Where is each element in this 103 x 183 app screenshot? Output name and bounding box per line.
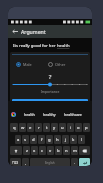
button[interactable]: Enter <box>79 158 90 166</box>
button[interactable]: ?123 <box>10 158 21 166</box>
staticText: Importance <box>10 89 90 94</box>
button[interactable]: Shift <box>10 146 22 155</box>
button[interactable]: w <box>19 123 26 132</box>
button[interactable]: m <box>71 146 78 155</box>
staticText: y <box>53 125 56 131</box>
staticText: ?123 <box>12 161 19 165</box>
staticText: z <box>26 148 28 154</box>
staticText: i <box>70 125 72 131</box>
button[interactable]: a <box>15 135 21 144</box>
button[interactable]: n <box>63 146 70 155</box>
staticText: x <box>33 148 36 154</box>
button[interactable]: s <box>22 135 29 144</box>
staticText: Male <box>23 62 32 67</box>
button[interactable]: y <box>51 123 58 132</box>
staticText: ? <box>10 73 90 81</box>
button[interactable]: r <box>35 123 42 132</box>
button[interactable]: healthy <box>43 112 56 117</box>
button[interactable]: healthcare <box>64 112 82 117</box>
button[interactable]: i <box>67 123 74 132</box>
button[interactable]: Male <box>16 62 32 67</box>
button[interactable]: SAVE <box>12 99 88 107</box>
staticText: m <box>73 148 77 154</box>
button[interactable]: u <box>59 123 66 132</box>
button[interactable]: Period <box>71 158 78 166</box>
button[interactable]: g <box>46 135 53 144</box>
staticText: . <box>74 160 76 165</box>
button[interactable]: f <box>38 135 45 144</box>
button[interactable]: e <box>27 123 34 132</box>
staticText: v <box>49 148 52 154</box>
button[interactable]: h <box>54 135 61 144</box>
staticText: Argument <box>21 28 46 35</box>
button[interactable]: z <box>23 146 30 155</box>
button[interactable]: l <box>78 135 85 144</box>
staticText: t <box>46 125 48 131</box>
button[interactable]: Backspace <box>79 146 90 155</box>
staticText: English <box>45 161 55 165</box>
staticText: health <box>57 43 70 49</box>
button[interactable]: Other <box>48 62 66 67</box>
button[interactable]: q <box>10 123 18 132</box>
button[interactable]: j <box>62 135 69 144</box>
staticText: Other <box>55 62 66 67</box>
button[interactable]: English <box>30 158 70 166</box>
staticText: n <box>65 148 68 154</box>
staticText: b <box>57 148 60 154</box>
button[interactable]: v <box>47 146 54 155</box>
staticText: c <box>41 148 44 154</box>
staticText: o <box>77 125 80 131</box>
button[interactable]: Back <box>8 25 21 38</box>
staticText: Its really good for her <box>13 43 57 49</box>
staticText: w <box>21 125 25 131</box>
button[interactable]: k <box>70 135 77 144</box>
staticText: e <box>29 125 32 131</box>
staticText: q <box>13 125 16 131</box>
staticText: a <box>17 137 20 143</box>
staticText: k <box>72 137 75 143</box>
button[interactable]: t <box>43 123 50 132</box>
button[interactable]: d <box>30 135 37 144</box>
staticText: d <box>32 137 35 143</box>
staticText: l <box>81 137 83 143</box>
staticText: p <box>85 125 88 131</box>
staticText: g <box>48 137 51 143</box>
staticText: h <box>56 137 59 143</box>
staticText: f <box>41 137 43 143</box>
staticText: , <box>25 160 27 165</box>
button[interactable]: c <box>39 146 46 155</box>
button[interactable]: health <box>24 112 35 117</box>
staticText: u <box>61 125 64 131</box>
staticText: j <box>65 137 67 143</box>
button[interactable]: p <box>83 123 90 132</box>
button[interactable]: Comma <box>22 158 29 166</box>
button[interactable]: x <box>31 146 38 155</box>
staticText: r <box>38 125 40 131</box>
staticText: s <box>24 137 27 143</box>
button[interactable]: o <box>75 123 82 132</box>
button[interactable]: b <box>55 146 62 155</box>
